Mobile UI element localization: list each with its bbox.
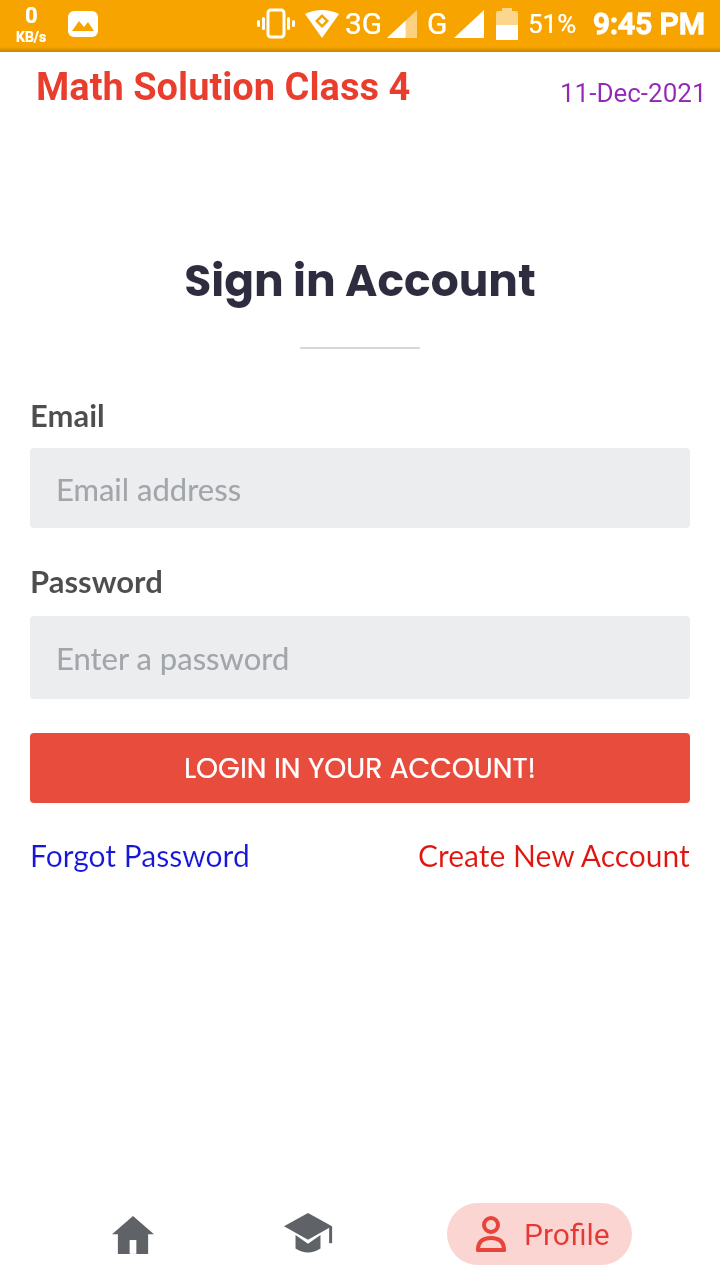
button[interactable]: Create New Account [418,837,690,873]
button[interactable]: Forgot Password [30,837,250,873]
staticText: 11-Dec-2021 [560,78,707,108]
staticText: 0 [25,3,38,29]
button[interactable]: Enter a password [30,616,690,699]
staticText: Sign in Account [0,250,720,312]
button[interactable]: LOGIN IN YOUR ACCOUNT! [30,733,690,803]
button[interactable] [97,1190,169,1280]
staticText: 3G [345,6,383,41]
staticText: Email [30,396,105,433]
button[interactable]: Profile [447,1203,632,1265]
staticText: Email address [56,470,242,507]
staticText: Math Solution Class 4 [36,65,411,110]
staticText: 51% [528,9,577,39]
button[interactable]: Email address [30,448,690,528]
staticText: LOGIN IN YOUR ACCOUNT! [184,749,536,788]
staticText: Password [30,562,163,599]
staticText: Profile [524,1217,610,1252]
button[interactable] [272,1190,344,1280]
staticText: Enter a password [56,639,290,676]
staticText: KB/s [16,29,47,45]
staticText: 9:45 PM [593,6,706,41]
staticText: G [427,6,448,41]
